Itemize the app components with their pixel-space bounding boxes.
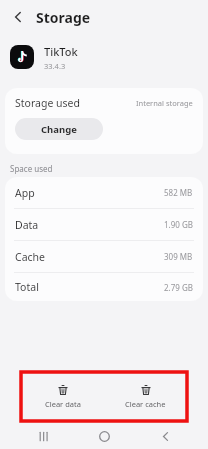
staticText: App xyxy=(15,186,35,200)
staticText: Clear data xyxy=(45,399,81,409)
staticText: Total xyxy=(15,280,39,294)
staticText: Storage xyxy=(36,8,91,27)
button[interactable]: Home xyxy=(87,423,121,449)
staticText: Storage used xyxy=(15,96,80,110)
staticText: 582 MB xyxy=(164,187,193,198)
button[interactable]: App xyxy=(5,177,203,208)
staticText: Space used xyxy=(10,163,53,174)
staticText: TikTok xyxy=(44,44,78,59)
staticText: 2.79 GB xyxy=(164,282,193,293)
staticText: Change xyxy=(41,123,77,136)
staticText: Cache xyxy=(15,250,45,264)
staticText: 1.90 GB xyxy=(164,219,193,230)
button[interactable]: Change xyxy=(15,118,103,140)
button[interactable]: Clear cache xyxy=(104,384,187,409)
button[interactable]: Data xyxy=(5,209,203,240)
button[interactable]: Recent apps xyxy=(27,423,61,449)
staticText: Data xyxy=(15,218,39,232)
staticText: 309 MB xyxy=(164,251,193,262)
button[interactable]: TikTok xyxy=(0,34,208,80)
staticText: Internal storage xyxy=(136,98,193,108)
button[interactable]: Cache xyxy=(5,241,203,272)
button[interactable]: Back xyxy=(148,423,182,449)
staticText: 33.4.3 xyxy=(44,61,66,71)
button[interactable]: Back xyxy=(6,5,30,29)
staticText: Clear cache xyxy=(125,399,166,409)
button[interactable]: Total xyxy=(5,273,203,301)
button[interactable]: Clear data xyxy=(21,384,104,409)
